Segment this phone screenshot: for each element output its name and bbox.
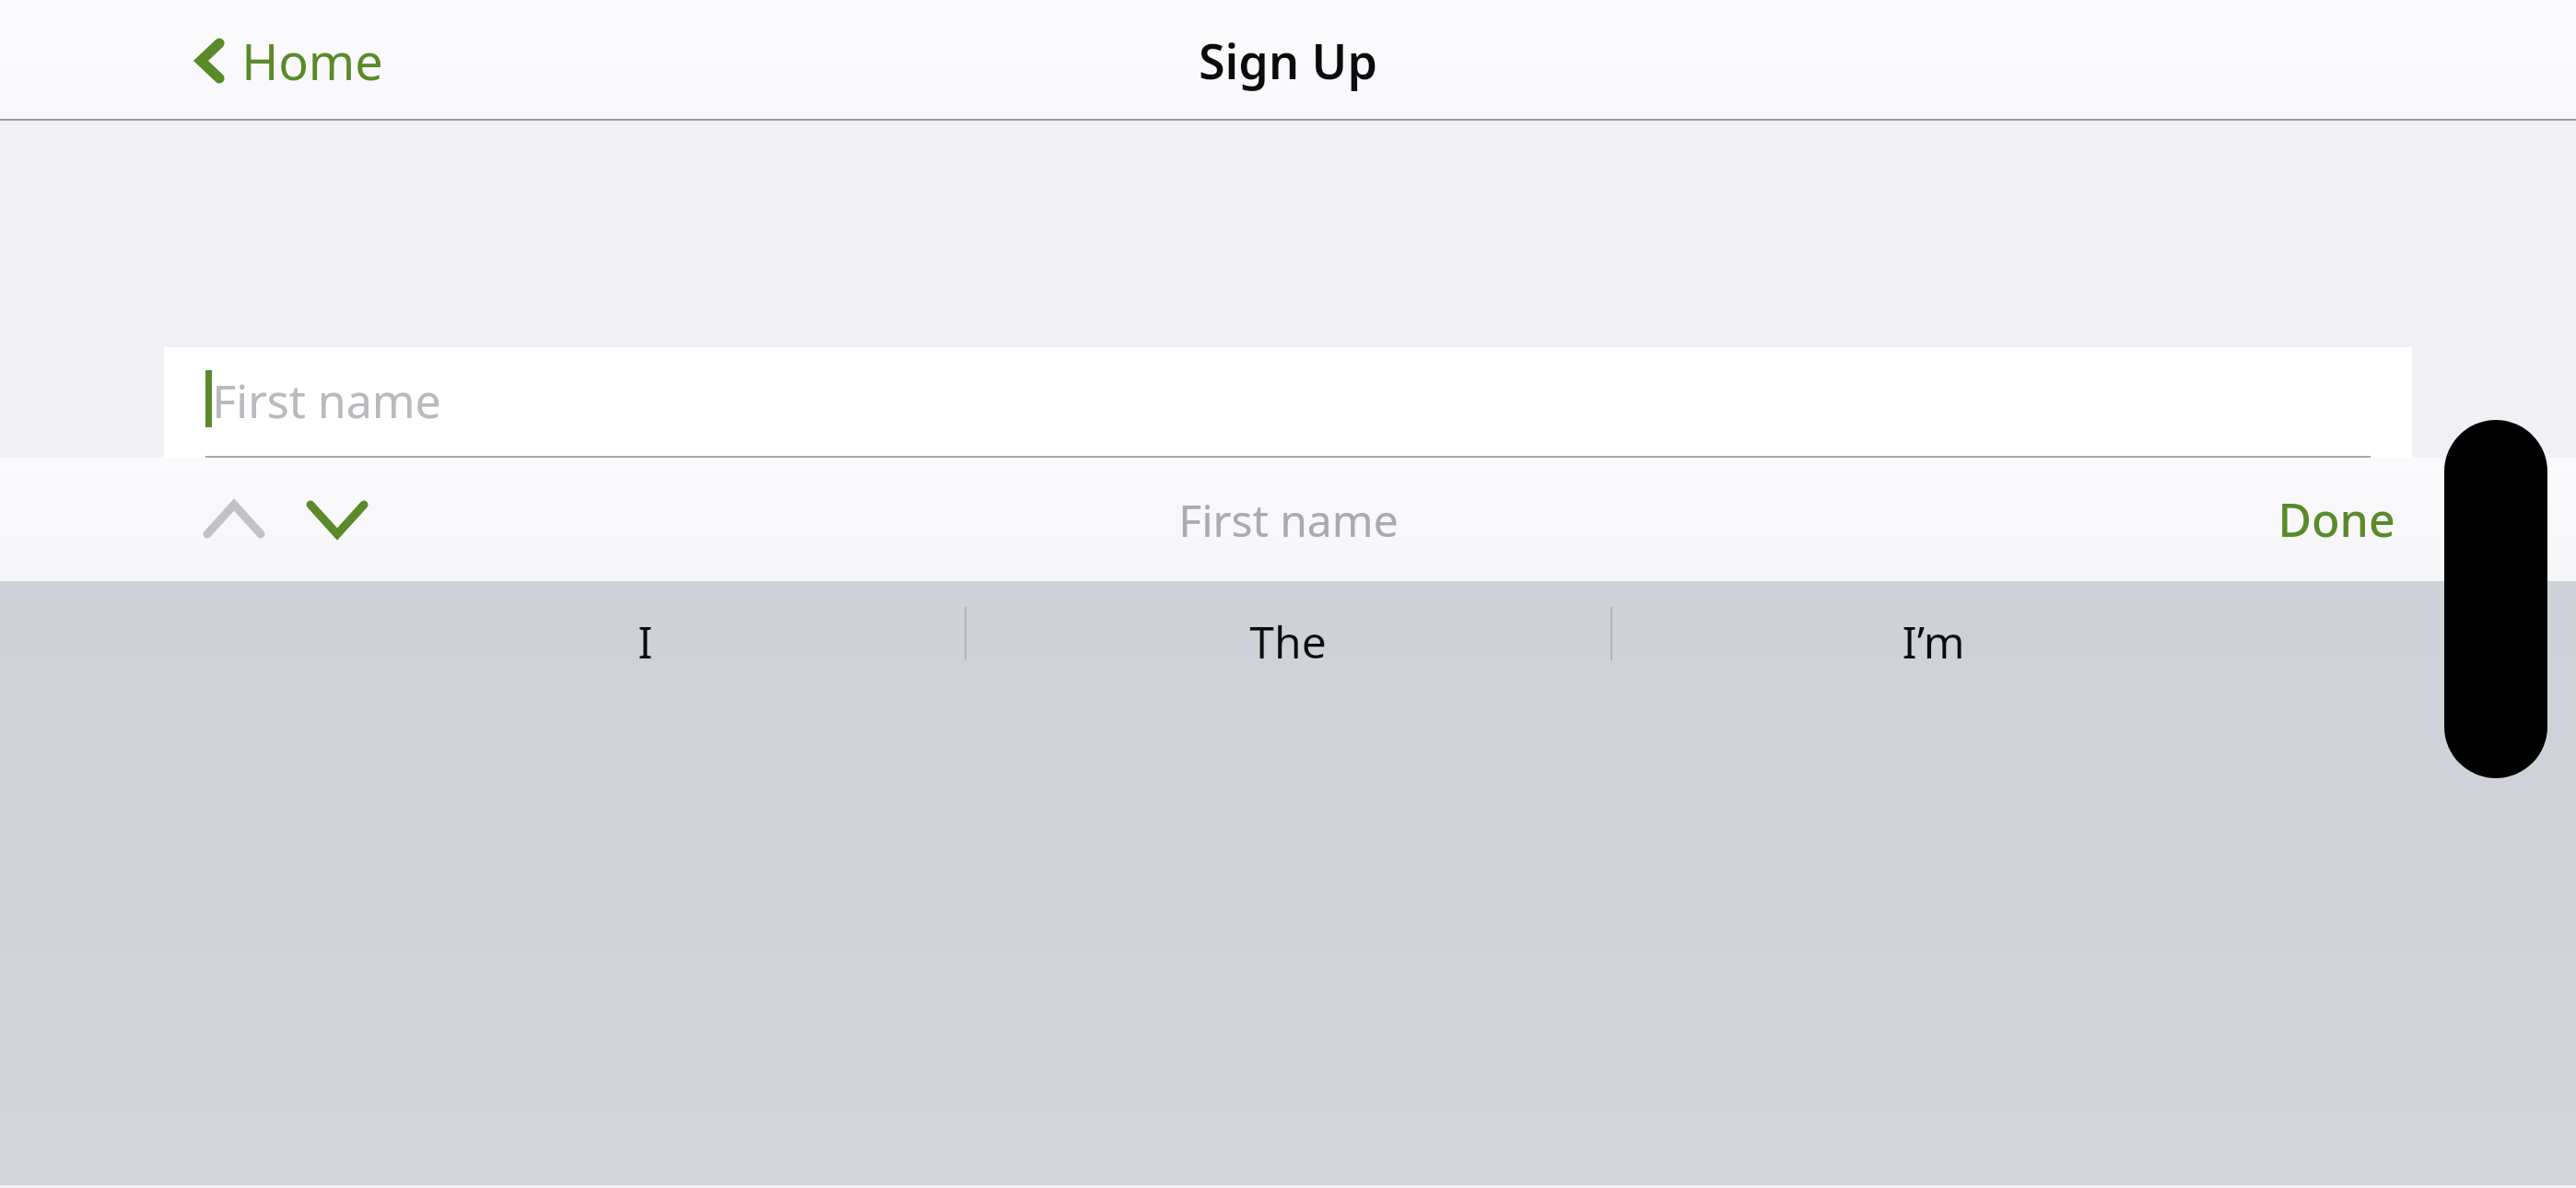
staticText: I — [638, 611, 653, 671]
staticText: Sign Up — [1199, 28, 1377, 93]
button[interactable]: I — [405, 587, 884, 695]
staticText: Home — [241, 27, 383, 95]
button[interactable]: The — [1048, 587, 1528, 695]
button[interactable]: Home — [181, 14, 396, 108]
staticText: First name — [1178, 490, 1399, 550]
staticText: The — [1249, 611, 1327, 671]
staticText: I’m — [1902, 611, 1965, 671]
button[interactable]: First name — [164, 347, 2412, 458]
button[interactable]: Next field — [287, 469, 387, 570]
staticText: First name — [212, 369, 441, 432]
staticText: Done — [2277, 488, 2395, 551]
button[interactable]: Previous field — [184, 469, 284, 570]
button[interactable]: Done — [2261, 472, 2412, 567]
button[interactable]: I’m — [1693, 587, 2172, 695]
